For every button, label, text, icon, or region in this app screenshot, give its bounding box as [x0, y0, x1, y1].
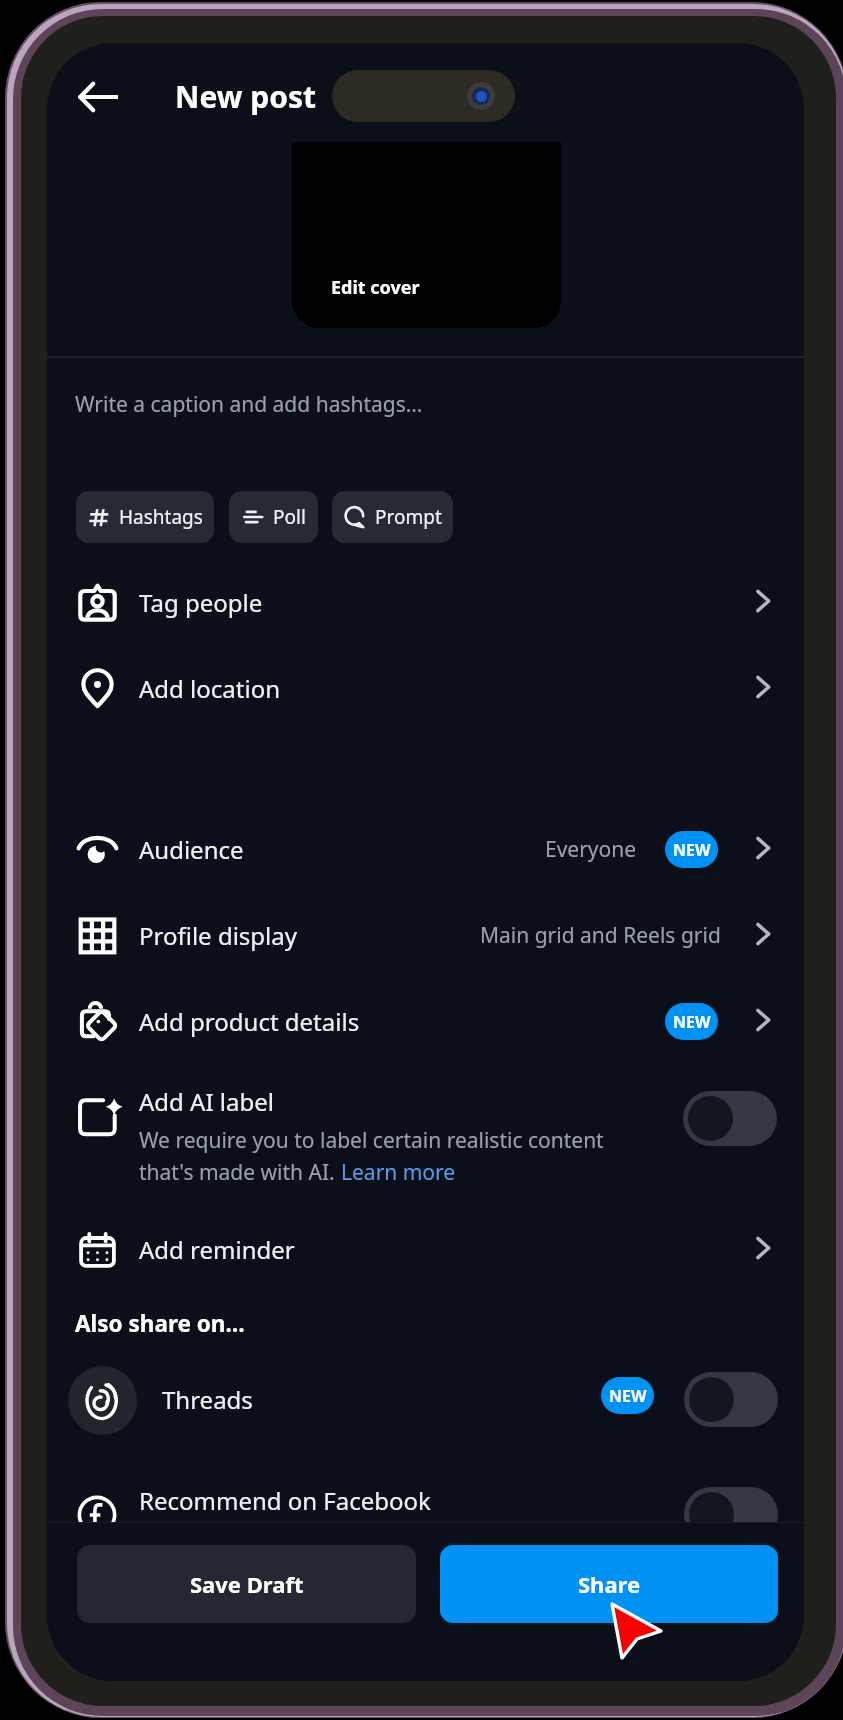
staticText: Write a caption and add hashtags…: [75, 390, 423, 419]
staticText: Add product details: [139, 1005, 360, 1038]
staticText: Add location: [139, 672, 280, 705]
staticText: Also share on…: [75, 1308, 245, 1339]
button[interactable]: Prompt: [332, 491, 453, 543]
staticText: New post: [175, 76, 316, 117]
button[interactable]: Poll: [229, 491, 318, 543]
staticText: Poll: [273, 504, 306, 530]
staticText: NEW: [609, 1385, 647, 1407]
button[interactable]: Add location: [47, 646, 804, 730]
button[interactable]: Add AI label toggle: [683, 1091, 777, 1146]
button[interactable]: Back: [67, 66, 129, 128]
button[interactable]: Save Draft: [77, 1545, 416, 1623]
button[interactable]: Hashtags: [76, 491, 214, 543]
staticText: Main grid and Reels grid: [480, 921, 721, 950]
staticText: Prompt: [375, 504, 442, 530]
staticText: Profile display: [139, 919, 297, 952]
staticText: Recommend on Facebook: [139, 1484, 431, 1517]
staticText: Share: [578, 1569, 641, 1599]
staticText: Save Draft: [190, 1569, 304, 1599]
staticText: Everyone: [545, 835, 637, 864]
button[interactable]: Profile display: [47, 893, 804, 977]
staticText: NEW: [673, 1011, 711, 1033]
button[interactable]: Threads: [47, 1352, 804, 1448]
button[interactable]: Edit cover: [292, 142, 561, 328]
button[interactable]: Add AI label: [47, 1085, 804, 1217]
staticText: that's made with AI.: [139, 1158, 341, 1187]
button[interactable]: Recommend on Facebook: [47, 1463, 804, 1559]
button[interactable]: Share: [440, 1545, 778, 1623]
staticText: Hashtags: [119, 504, 203, 530]
button[interactable]: Share to Threads toggle: [684, 1372, 778, 1427]
staticText: Tag people: [139, 586, 263, 619]
button[interactable]: Add product details: [47, 979, 804, 1063]
staticText: Threads: [162, 1383, 253, 1416]
button[interactable]: Audience: [47, 807, 804, 891]
button[interactable]: Tag people: [47, 560, 804, 644]
staticText: Add AI label: [139, 1085, 274, 1118]
staticText: Add reminder: [139, 1233, 295, 1266]
staticText: We require you to label certain realisti…: [139, 1126, 604, 1155]
button[interactable]: Recommend on Facebook toggle: [684, 1487, 778, 1542]
staticText: NEW: [673, 839, 711, 861]
staticText: Edit cover: [331, 275, 420, 300]
staticText: Audience: [139, 833, 244, 866]
button[interactable]: Add reminder: [47, 1207, 804, 1291]
staticText: Learn more: [341, 1158, 456, 1187]
